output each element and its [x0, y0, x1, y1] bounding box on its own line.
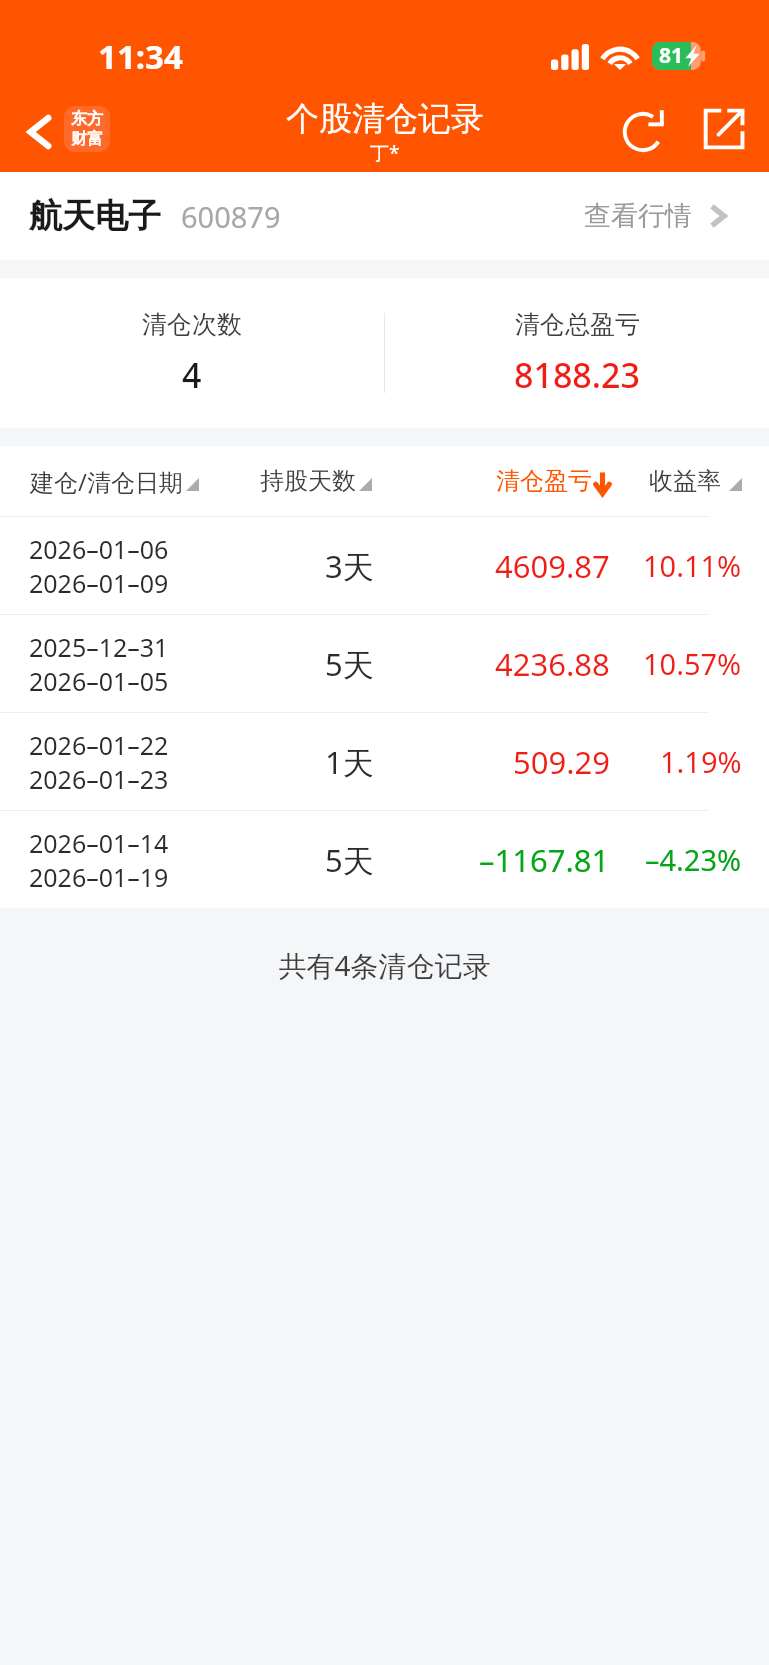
staticText: 509.29 [513, 741, 610, 783]
staticText: –1167.81 [479, 839, 610, 881]
staticText: 5天 [325, 643, 374, 685]
staticText: 4236.88 [495, 643, 610, 685]
staticText: 1.19% [660, 742, 742, 781]
staticText: –4.23% [645, 840, 742, 879]
staticText: 个股清仓记录 [286, 98, 484, 140]
staticText: 11:34 [98, 34, 183, 79]
button[interactable]: 建仓/清仓日期 [30, 465, 260, 498]
staticText: 2026–01–19 [29, 860, 169, 894]
staticText: 4609.87 [495, 545, 610, 587]
staticText: 丁* [370, 140, 400, 166]
button[interactable]: 清仓盈亏 [496, 466, 611, 496]
button[interactable]: 2026–01–22 [0, 712, 769, 810]
button[interactable]: 收益率 [649, 466, 742, 496]
staticText: 收益率 [649, 466, 721, 496]
staticText: 81 [659, 41, 684, 69]
staticText: 2026–01–14 [29, 826, 169, 860]
staticText: 航天电子 [29, 195, 161, 237]
button[interactable]: 航天电子 [0, 172, 769, 260]
button[interactable]: Share [697, 101, 753, 157]
staticText: 10.11% [643, 546, 742, 585]
staticText: 清仓总盈亏 [515, 309, 640, 340]
staticText: 4 [182, 352, 202, 398]
staticText: 建仓/清仓日期 [30, 465, 183, 498]
staticText: 查看行情 [584, 199, 692, 233]
staticText: 清仓盈亏 [496, 466, 592, 496]
button[interactable]: 持股天数 [260, 466, 496, 496]
staticText: 东方 [71, 109, 103, 129]
staticText: 2026–01–23 [29, 762, 169, 796]
button[interactable]: 2025–12–31 [0, 614, 769, 712]
button[interactable]: Back [26, 109, 110, 155]
staticText: 1天 [325, 741, 374, 783]
staticText: 2026–01–05 [29, 664, 169, 698]
staticText: 2025–12–31 [29, 630, 169, 664]
staticText: 持股天数 [260, 466, 356, 496]
staticText: 3天 [325, 545, 374, 587]
button[interactable]: Refresh [617, 101, 673, 157]
staticText: 清仓次数 [142, 309, 242, 340]
staticText: 财富 [71, 129, 103, 149]
staticText: 共有4条清仓记录 [0, 946, 769, 984]
staticText: 2026–01–06 [29, 532, 169, 566]
other: Back [28, 116, 50, 148]
button[interactable]: 2026–01–14 [0, 810, 769, 908]
staticText: 2026–01–09 [29, 566, 169, 600]
staticText: 8188.23 [514, 352, 640, 398]
staticText: 5天 [325, 839, 374, 881]
staticText: 2026–01–22 [29, 728, 169, 762]
button[interactable]: 2026–01–06 [0, 516, 769, 614]
staticText: 10.57% [643, 644, 742, 683]
staticText: 600879 [181, 197, 281, 236]
